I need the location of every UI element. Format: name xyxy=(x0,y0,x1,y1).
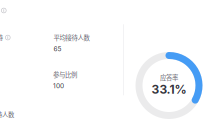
staticText: 总接待人数 xyxy=(0,110,14,119)
button[interactable]: Metric description xyxy=(4,34,11,41)
staticText: 100 xyxy=(53,82,64,90)
staticText: 应答率 xyxy=(160,73,178,82)
button[interactable]: Metric description xyxy=(0,7,7,14)
staticText: 65 xyxy=(53,45,61,53)
staticText: 今日接待 xyxy=(0,33,3,42)
staticText: 33.1% xyxy=(151,82,186,97)
staticText: 参与比例 xyxy=(53,70,77,79)
staticText: 平均接待人数 xyxy=(53,33,89,42)
